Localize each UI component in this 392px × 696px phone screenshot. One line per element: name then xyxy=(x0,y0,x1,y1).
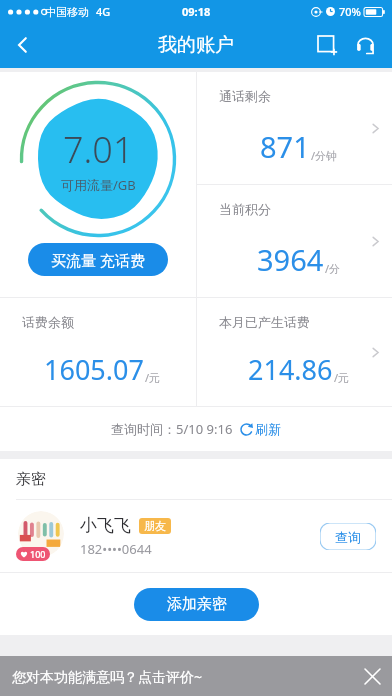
button[interactable]: Back xyxy=(0,22,46,68)
button[interactable]: 当前积分 xyxy=(197,185,392,297)
staticText: 182••••0644 xyxy=(80,540,152,558)
staticText: 4G xyxy=(96,4,111,19)
button[interactable]: 买流量 充话费 xyxy=(28,243,168,276)
staticText: 朋友 xyxy=(144,519,166,533)
staticText: 亲密 xyxy=(16,470,46,489)
button[interactable]: 话费余额 xyxy=(0,298,196,406)
button[interactable]: 查询 xyxy=(320,523,376,550)
button[interactable]: Add xyxy=(310,28,344,62)
staticText: 本月已产生话费 xyxy=(219,314,310,330)
staticText: 我的账户 xyxy=(158,33,234,57)
staticText: 871 xyxy=(260,127,310,166)
button[interactable]: 100 xyxy=(0,500,392,572)
button[interactable]: 查询时间：5/10 9:16 xyxy=(0,407,392,451)
staticText: 可用流量/GB xyxy=(61,176,136,194)
button[interactable]: 添加亲密 xyxy=(134,588,259,621)
staticText: 买流量 充话费 xyxy=(51,250,145,270)
staticText: 查询时间：5/10 9:16 xyxy=(111,420,233,438)
staticText: 您对本功能满意吗？点击评价~ xyxy=(12,667,203,686)
staticText: 通话剩余 xyxy=(219,88,271,104)
staticText: 70% xyxy=(339,4,361,19)
button[interactable]: Close xyxy=(352,656,392,696)
button[interactable]: 通话剩余 xyxy=(197,72,392,184)
staticText: 214.86 xyxy=(248,351,333,388)
staticText: /分钟 xyxy=(311,148,338,163)
staticText: 中国移动 xyxy=(45,5,89,19)
staticText: 刷新 xyxy=(255,421,281,437)
staticText: 小飞飞 xyxy=(80,515,131,536)
staticText: 查询 xyxy=(335,529,361,545)
button[interactable]: Customer service xyxy=(348,28,382,62)
staticText: 添加亲密 xyxy=(167,595,227,614)
staticText: 100 xyxy=(30,548,46,560)
staticText: 7.01 xyxy=(63,125,134,174)
staticText: /元 xyxy=(145,370,161,385)
staticText: /分 xyxy=(325,261,341,276)
staticText: 1605.07 xyxy=(44,351,144,388)
staticText: 3964 xyxy=(257,240,324,279)
staticText: 09:18 xyxy=(182,4,211,19)
staticText: 话费余额 xyxy=(22,314,74,330)
staticText: /元 xyxy=(334,370,350,385)
button[interactable]: 本月已产生话费 xyxy=(197,298,392,406)
staticText: 当前积分 xyxy=(219,201,271,217)
